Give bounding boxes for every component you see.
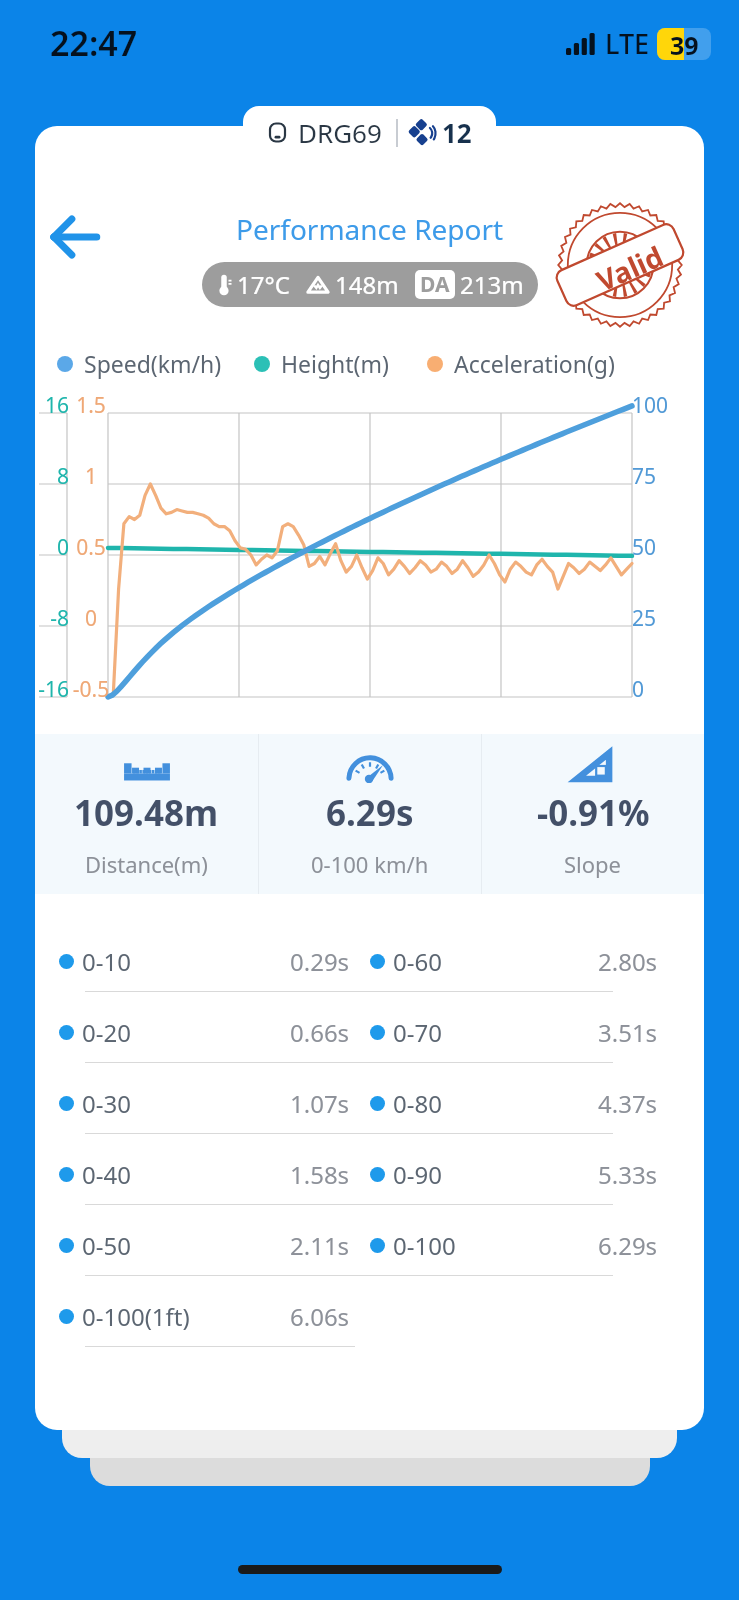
staticText: -0.91%	[537, 789, 650, 837]
staticText: 0.29s	[290, 945, 350, 978]
staticText: 0-30	[82, 1087, 131, 1120]
button[interactable]: Back	[44, 206, 102, 264]
staticText: 22:47	[50, 20, 138, 66]
staticText: 6.29s	[598, 1229, 658, 1262]
staticText: 6.06s	[290, 1300, 350, 1333]
staticText: 109.48m	[74, 789, 219, 837]
staticText: 50	[632, 533, 657, 562]
staticText: 0-100	[393, 1229, 456, 1262]
staticText: 8	[35, 462, 69, 491]
button[interactable]: 0-100(1ft)	[59, 1285, 350, 1347]
staticText: 1	[71, 462, 111, 491]
staticText: LTE	[605, 25, 650, 62]
staticText: DRG69	[298, 115, 382, 150]
staticText: 0-60	[393, 945, 442, 978]
button[interactable]: 0-20	[59, 1001, 350, 1063]
button[interactable]: 0-70	[370, 1001, 658, 1063]
staticText: 0-40	[82, 1158, 131, 1191]
staticText: 17°C	[237, 268, 290, 301]
staticText: 12	[442, 115, 472, 150]
staticText: 0-20	[82, 1016, 131, 1049]
staticText: -16	[35, 675, 69, 704]
staticText: 75	[632, 462, 657, 491]
staticText: -0.5	[71, 675, 111, 704]
staticText: 0	[632, 675, 645, 704]
button[interactable]: 0-60	[370, 930, 658, 992]
button[interactable]: 0-10	[59, 930, 350, 992]
staticText: 0	[35, 533, 69, 562]
staticText: 4.37s	[598, 1087, 658, 1120]
staticText: 148m	[335, 268, 399, 301]
staticText: 6.29s	[326, 789, 414, 837]
staticText: Acceleration(g)	[454, 348, 615, 379]
staticText: -8	[35, 604, 69, 633]
staticText: DA	[420, 270, 450, 299]
staticText: 25	[632, 604, 657, 633]
button[interactable]: 6.29s	[259, 749, 481, 879]
staticText: 1.58s	[290, 1158, 350, 1191]
staticText: 100	[632, 391, 669, 420]
staticText: 2.11s	[290, 1229, 350, 1262]
staticText: 0-70	[393, 1016, 442, 1049]
staticText: 39	[670, 28, 699, 60]
button[interactable]: 0-90	[370, 1143, 658, 1205]
staticText: 0	[71, 604, 111, 633]
staticText: Slope	[564, 849, 622, 879]
button[interactable]: 0-30	[59, 1072, 350, 1134]
staticText: 0-100 km/h	[311, 849, 429, 879]
staticText: 1.5	[71, 391, 111, 420]
staticText: 1.07s	[290, 1087, 350, 1120]
staticText: Distance(m)	[85, 849, 208, 879]
button[interactable]: -0.91%	[482, 749, 704, 879]
staticText: 2.80s	[598, 945, 658, 978]
staticText: 0-50	[82, 1229, 131, 1262]
button[interactable]: DRG69	[243, 106, 496, 159]
staticText: 0-90	[393, 1158, 442, 1191]
button[interactable]: 0-100	[370, 1214, 658, 1276]
staticText: Performance Report	[236, 210, 504, 248]
staticText: 3.51s	[598, 1016, 658, 1049]
staticText: 0.66s	[290, 1016, 350, 1049]
staticText: Speed(km/h)	[84, 348, 222, 379]
staticText: 0-80	[393, 1087, 442, 1120]
staticText: Valid	[590, 237, 669, 299]
staticText: 0-10	[82, 945, 131, 978]
button[interactable]: 0-50	[59, 1214, 350, 1276]
button[interactable]: 0-40	[59, 1143, 350, 1205]
staticText: 0-100(1ft)	[82, 1300, 190, 1333]
staticText: Height(m)	[281, 348, 389, 379]
staticText: 5.33s	[598, 1158, 658, 1191]
staticText: 0.5	[71, 533, 111, 562]
staticText: 16	[35, 391, 69, 420]
button[interactable]: 0-80	[370, 1072, 658, 1134]
button[interactable]: 109.48m	[35, 749, 258, 879]
staticText: 213m	[460, 268, 524, 301]
